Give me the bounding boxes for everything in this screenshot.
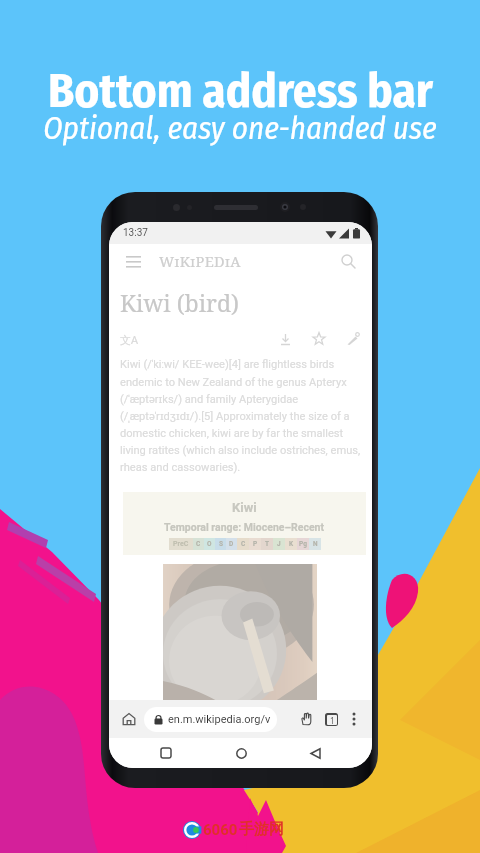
staticText: Kiwi (/ˈkiːwi/ KEE-wee)[4] are flightles…: [120, 358, 361, 473]
button[interactable]: Download: [274, 328, 296, 350]
button[interactable]: Home: [224, 738, 258, 768]
staticText: O: [207, 540, 212, 548]
button[interactable]: Edit: [342, 328, 364, 350]
staticText: Kiwi (bird): [120, 287, 239, 318]
staticText: J: [277, 540, 281, 548]
staticText: K: [289, 540, 294, 548]
staticText: C: [241, 540, 246, 548]
button[interactable]: Gesture navigation: [295, 707, 319, 731]
staticText: C: [196, 540, 201, 548]
staticText: Kiwi: [232, 500, 257, 515]
button[interactable]: Watch: [308, 328, 330, 350]
staticText: 1: [330, 715, 335, 725]
staticText: T: [265, 540, 270, 548]
button[interactable]: Tabs: [319, 707, 343, 731]
button[interactable]: Back: [298, 738, 332, 768]
staticText: WɪKɪPEDɪA: [159, 251, 241, 271]
staticText: en.m.wikipedia.org/v: [168, 713, 271, 726]
button[interactable]: Home: [116, 706, 142, 732]
staticText: Pg: [299, 540, 307, 548]
staticText: S: [219, 540, 223, 548]
staticText: Temporal range: Miocene–Recent: [164, 521, 325, 533]
staticText: N: [313, 540, 318, 548]
staticText: Bottom address bar: [48, 63, 433, 119]
staticText: 手游网: [239, 820, 284, 839]
staticText: 文A: [120, 332, 139, 347]
button[interactable]: en.m.wikipedia.org/v: [144, 707, 277, 732]
staticText: 6060: [203, 821, 238, 839]
button[interactable]: Recents: [149, 738, 183, 768]
button[interactable]: Menu: [121, 249, 145, 273]
staticText: P: [253, 540, 258, 548]
staticText: 13:37: [123, 227, 148, 239]
staticText: Optional, easy one-handed use: [43, 110, 437, 147]
button[interactable]: Language: [120, 329, 140, 349]
staticText: PreC: [173, 540, 189, 548]
button[interactable]: Search: [336, 249, 360, 273]
button[interactable]: More options: [343, 708, 365, 730]
staticText: D: [229, 540, 234, 548]
